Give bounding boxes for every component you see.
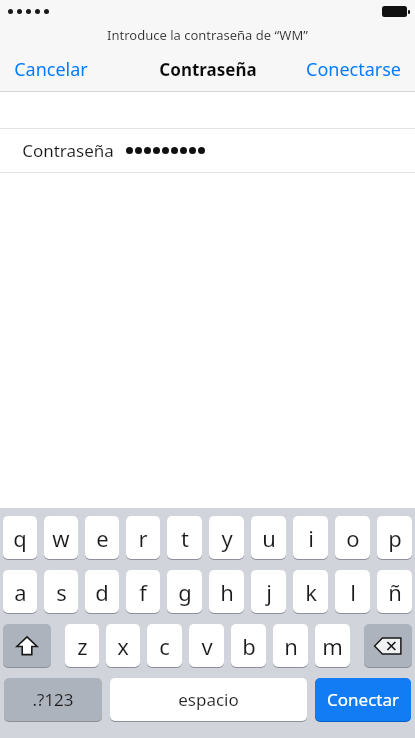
staticText: r bbox=[138, 523, 148, 553]
staticText: p bbox=[388, 523, 402, 553]
button[interactable]: k bbox=[293, 570, 328, 613]
button[interactable]: z bbox=[65, 624, 99, 667]
button[interactable]: .?123 bbox=[4, 678, 102, 721]
button[interactable]: p bbox=[377, 516, 412, 559]
staticText: ñ bbox=[388, 577, 402, 607]
button[interactable]: o bbox=[335, 516, 370, 559]
button[interactable]: Conectar bbox=[315, 678, 411, 721]
button[interactable]: f bbox=[126, 570, 160, 613]
button[interactable]: q bbox=[3, 516, 37, 559]
button[interactable]: w bbox=[44, 516, 78, 559]
staticText: z bbox=[77, 631, 88, 661]
staticText: Contraseña bbox=[22, 139, 114, 162]
staticText: i bbox=[308, 523, 314, 553]
staticText: k bbox=[305, 577, 317, 607]
button[interactable]: t bbox=[167, 516, 202, 559]
button[interactable]: h bbox=[209, 570, 244, 613]
staticText: s bbox=[56, 577, 67, 607]
staticText: Contraseña bbox=[159, 58, 257, 81]
button[interactable]: e bbox=[85, 516, 119, 559]
staticText: a bbox=[14, 577, 27, 607]
button[interactable]: m bbox=[315, 624, 350, 667]
button[interactable]: Delete bbox=[364, 624, 412, 667]
staticText: v bbox=[201, 631, 213, 661]
button[interactable]: y bbox=[209, 516, 244, 559]
button[interactable]: Shift bbox=[3, 624, 51, 667]
button[interactable]: l bbox=[335, 570, 370, 613]
button[interactable]: x bbox=[106, 624, 140, 667]
staticText: e bbox=[96, 523, 109, 553]
button[interactable]: d bbox=[85, 570, 119, 613]
staticText: Cancelar bbox=[14, 57, 88, 82]
button[interactable]: v bbox=[189, 624, 224, 667]
button[interactable]: u bbox=[251, 516, 286, 559]
button[interactable]: ñ bbox=[377, 570, 412, 613]
staticText: q bbox=[13, 523, 27, 553]
staticText: Conectar bbox=[327, 688, 399, 711]
staticText: x bbox=[117, 631, 129, 661]
staticText: j bbox=[266, 577, 272, 607]
button[interactable]: r bbox=[126, 516, 160, 559]
button[interactable]: j bbox=[251, 570, 286, 613]
staticText: .?123 bbox=[32, 688, 74, 711]
staticText: u bbox=[262, 523, 276, 553]
button[interactable]: Conectarse bbox=[292, 49, 415, 90]
staticText: l bbox=[350, 577, 356, 607]
staticText: espacio bbox=[178, 688, 239, 711]
staticText: f bbox=[139, 577, 147, 607]
button[interactable]: Contraseña bbox=[0, 129, 415, 172]
button[interactable]: i bbox=[293, 516, 328, 559]
staticText: Introduce la contraseña de “WM” bbox=[107, 26, 308, 44]
staticText: t bbox=[181, 523, 189, 553]
button[interactable]: a bbox=[3, 570, 37, 613]
staticText: n bbox=[284, 631, 298, 661]
staticText: m bbox=[322, 631, 343, 661]
staticText: o bbox=[346, 523, 360, 553]
staticText: d bbox=[95, 577, 109, 607]
staticText: h bbox=[220, 577, 234, 607]
staticText: w bbox=[52, 523, 70, 553]
button[interactable]: espacio bbox=[110, 678, 307, 721]
button[interactable]: n bbox=[273, 624, 308, 667]
button[interactable]: s bbox=[44, 570, 78, 613]
staticText: Conectarse bbox=[306, 57, 401, 82]
staticText: g bbox=[178, 577, 192, 607]
staticText: y bbox=[221, 523, 233, 553]
staticText: c bbox=[159, 631, 170, 661]
button[interactable]: b bbox=[231, 624, 266, 667]
button[interactable]: Cancelar bbox=[0, 49, 102, 90]
button[interactable]: c bbox=[147, 624, 182, 667]
button[interactable]: g bbox=[167, 570, 202, 613]
staticText: b bbox=[242, 631, 256, 661]
